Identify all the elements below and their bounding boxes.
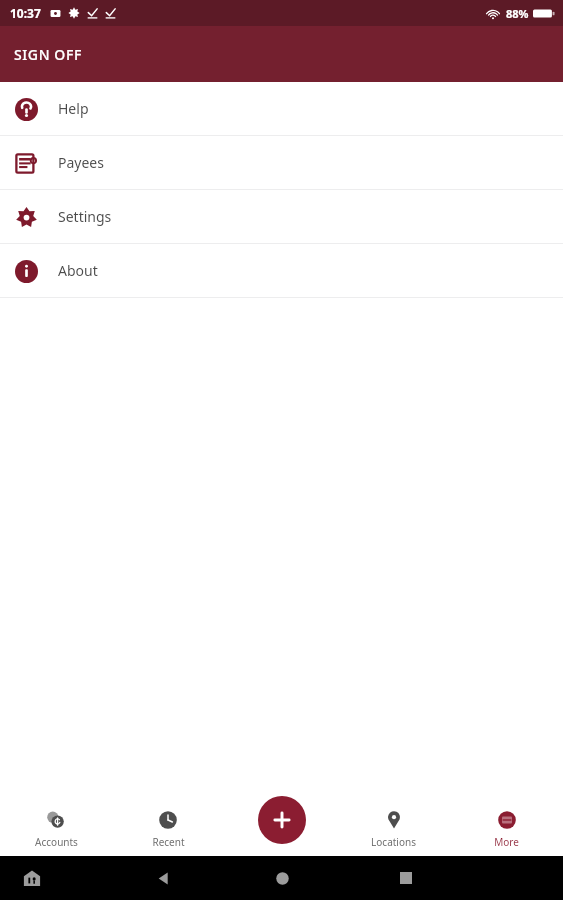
button[interactable]: Payees — [0, 136, 563, 189]
button[interactable]: Recent apps — [391, 863, 421, 893]
button[interactable]: Input method — [22, 868, 42, 888]
button[interactable]: Help — [0, 82, 563, 135]
button[interactable]: Home — [267, 863, 297, 893]
staticText: SIGN OFF — [14, 45, 82, 64]
staticText: Help — [58, 99, 89, 118]
button[interactable]: More — [450, 801, 563, 856]
button[interactable]: Back — [148, 863, 178, 893]
button[interactable]: SIGN OFF — [0, 35, 96, 74]
staticText: Accounts — [35, 835, 78, 849]
staticText: 10:37 — [10, 5, 41, 21]
staticText: 88% — [506, 6, 529, 21]
staticText: Payees — [58, 153, 104, 172]
staticText: Locations — [371, 835, 416, 849]
button[interactable]: Add — [258, 796, 306, 844]
staticText: Settings — [58, 207, 112, 226]
button[interactable]: Accounts — [0, 801, 112, 856]
button[interactable]: Recent — [112, 801, 224, 856]
button[interactable]: Locations — [337, 801, 450, 856]
staticText: More — [494, 835, 519, 849]
button[interactable]: Settings — [0, 190, 563, 243]
staticText: Recent — [152, 835, 185, 849]
button[interactable]: About — [0, 244, 563, 297]
staticText: About — [58, 261, 98, 280]
